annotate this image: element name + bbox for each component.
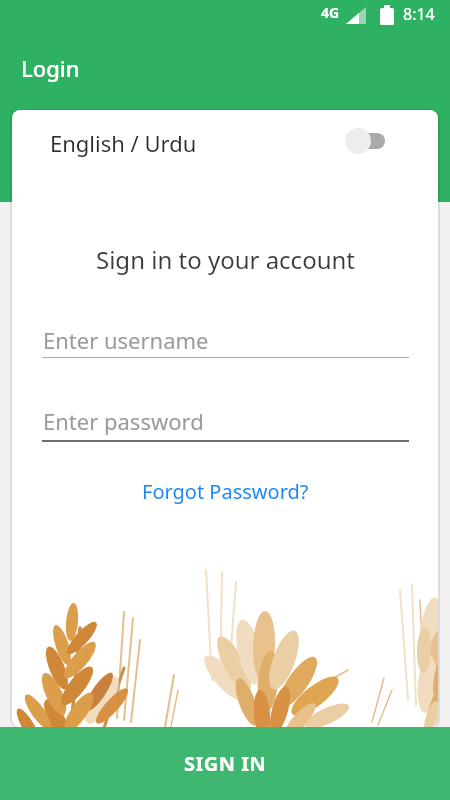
staticText: SIGN IN — [184, 750, 267, 777]
staticText: Login — [21, 53, 80, 83]
staticText: English / Urdu — [50, 128, 197, 158]
staticText: 8:14 — [403, 3, 435, 25]
button[interactable]: SIGN IN — [0, 727, 450, 800]
staticText: Enter password — [43, 406, 204, 436]
button[interactable] — [349, 133, 385, 149]
staticText: 4G — [321, 3, 340, 22]
button[interactable]: Forgot Password? — [142, 478, 309, 505]
button[interactable]: Enter password — [42, 401, 409, 442]
button[interactable]: Enter username — [42, 320, 409, 358]
staticText: Sign in to your account — [96, 243, 355, 276]
staticText: Enter username — [43, 325, 209, 355]
